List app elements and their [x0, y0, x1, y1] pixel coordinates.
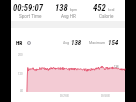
- button[interactable]: 452: [87, 0, 125, 21]
- button[interactable]: 00:59:07: [11, 0, 49, 21]
- staticText: 40: [20, 89, 24, 93]
- staticText: 452: [93, 3, 106, 13]
- staticText: 138: [114, 65, 119, 69]
- button[interactable]: Heart rate info: [27, 41, 31, 45]
- staticText: 154: [108, 39, 119, 47]
- staticText: Maximum: [89, 41, 106, 45]
- staticText: Avg: [63, 41, 69, 45]
- staticText: Avg HR: [61, 14, 76, 19]
- staticText: kcal: [108, 8, 115, 12]
- staticText: 200: [18, 53, 23, 57]
- staticText: 00:58:00: [101, 95, 110, 98]
- button[interactable]: 138: [49, 0, 87, 21]
- staticText: 120: [18, 72, 23, 76]
- staticText: 138: [55, 3, 68, 13]
- staticText: bpm: [70, 8, 78, 12]
- staticText: Calorie: [99, 14, 114, 19]
- staticText: 138: [71, 39, 82, 47]
- staticText: 00:59:07: [13, 3, 43, 13]
- staticText: HR: [16, 40, 23, 46]
- staticText: Sport Time: [19, 14, 42, 19]
- staticText: 00:29:00: [60, 95, 69, 98]
